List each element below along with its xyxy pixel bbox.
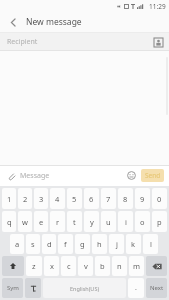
button[interactable]: n (112, 256, 127, 276)
button[interactable]: Next (146, 278, 167, 298)
button[interactable]: 8 (118, 188, 133, 209)
staticText: 6 (89, 194, 94, 204)
staticText: b (100, 261, 105, 271)
staticText: 2 (23, 194, 28, 204)
staticText: x (50, 261, 54, 271)
staticText: 5 (72, 194, 77, 204)
staticText: q (7, 217, 12, 227)
staticText: u (106, 217, 111, 227)
button[interactable]: s (26, 234, 40, 254)
staticText: r (56, 217, 60, 227)
button[interactable]: t (67, 211, 82, 232)
button[interactable]: Backspace (146, 256, 167, 276)
staticText: 11:29 (149, 2, 166, 11)
button[interactable]: h (92, 234, 107, 254)
button[interactable]: 4 (50, 188, 65, 209)
button[interactable]: English(US) (43, 278, 126, 298)
staticText: t (73, 217, 76, 227)
button[interactable]: u (101, 211, 116, 232)
button[interactable]: j (109, 234, 124, 254)
button[interactable]: Add recipient from contacts (153, 37, 163, 47)
button[interactable]: Shift (2, 256, 24, 276)
button[interactable]: f (58, 234, 73, 254)
staticText: y (90, 217, 94, 227)
staticText: 7 (106, 194, 111, 204)
staticText: Sym (7, 284, 19, 292)
staticText: Send (145, 171, 161, 180)
button[interactable]: Back (5, 14, 21, 30)
button[interactable]: q (2, 211, 16, 232)
staticText: g (80, 239, 85, 249)
staticText: k (131, 239, 136, 249)
staticText: l (150, 239, 152, 249)
button[interactable]: r (50, 211, 65, 232)
staticText: f (64, 239, 67, 249)
button[interactable]: Recipient (0, 33, 169, 50)
button[interactable]: c (61, 256, 76, 276)
button[interactable]: Keyboard settings (25, 278, 41, 298)
staticText: o (140, 217, 145, 227)
button[interactable]: 1 (2, 188, 16, 209)
staticText: i (125, 217, 127, 227)
button[interactable]: . (128, 278, 144, 298)
button[interactable]: i (118, 211, 133, 232)
button[interactable]: g (75, 234, 90, 254)
button[interactable]: x (44, 256, 59, 276)
button[interactable]: 7 (101, 188, 116, 209)
staticText: m (133, 261, 141, 271)
staticText: e (39, 217, 44, 227)
button[interactable]: b (95, 256, 110, 276)
staticText: 9 (140, 194, 145, 204)
staticText: v (84, 261, 88, 271)
staticText: j (116, 239, 118, 249)
staticText: Next (150, 284, 164, 292)
button[interactable]: y (84, 211, 99, 232)
staticText: 4 (55, 194, 60, 204)
button[interactable]: Send (141, 169, 164, 182)
button[interactable]: 0 (152, 188, 167, 209)
button[interactable]: z (26, 256, 42, 276)
button[interactable]: k (126, 234, 141, 254)
button[interactable]: 2 (18, 188, 32, 209)
staticText: English(US) (70, 285, 100, 292)
staticText: Message (20, 171, 125, 181)
staticText: New message (26, 16, 82, 28)
staticText: s (31, 239, 35, 249)
staticText: d (47, 239, 52, 249)
button[interactable]: a (10, 234, 24, 254)
button[interactable]: e (34, 211, 48, 232)
button[interactable]: d (42, 234, 56, 254)
button[interactable]: 6 (84, 188, 99, 209)
staticText: 8 (123, 194, 128, 204)
button[interactable]: l (143, 234, 158, 254)
staticText: Recipient (7, 37, 38, 47)
staticText: w (22, 217, 28, 227)
staticText: 3 (39, 194, 44, 204)
button[interactable]: o (135, 211, 150, 232)
staticText: p (157, 217, 162, 227)
staticText: n (117, 261, 122, 271)
staticText: 1 (7, 194, 12, 204)
staticText: a (15, 239, 20, 249)
staticText: 0 (157, 194, 162, 204)
staticText: h (97, 239, 102, 249)
staticText: . (135, 283, 137, 293)
button[interactable]: Attach (5, 170, 17, 182)
button[interactable]: 5 (67, 188, 82, 209)
button[interactable]: p (152, 211, 167, 232)
button[interactable]: v (78, 256, 93, 276)
button[interactable]: Emoji (125, 169, 138, 182)
staticText: c (67, 261, 71, 271)
staticText: z (32, 261, 36, 271)
button[interactable]: w (18, 211, 32, 232)
button[interactable]: 3 (34, 188, 48, 209)
button[interactable]: Sym (2, 278, 23, 298)
button[interactable]: 9 (135, 188, 150, 209)
button[interactable]: m (129, 256, 144, 276)
